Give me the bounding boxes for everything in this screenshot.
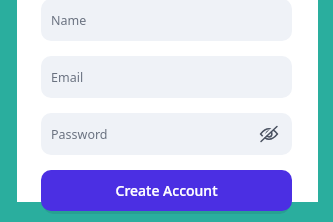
button[interactable]: Password	[41, 113, 292, 155]
button[interactable]: Create Account	[41, 170, 292, 211]
staticText: Password	[51, 126, 108, 143]
staticText: Create Account	[115, 181, 218, 200]
staticText: Email	[51, 69, 84, 86]
button[interactable]: Show password	[258, 123, 280, 145]
button[interactable]: Name	[41, 0, 292, 41]
button[interactable]: Email	[41, 56, 292, 98]
staticText: Name	[51, 12, 87, 29]
